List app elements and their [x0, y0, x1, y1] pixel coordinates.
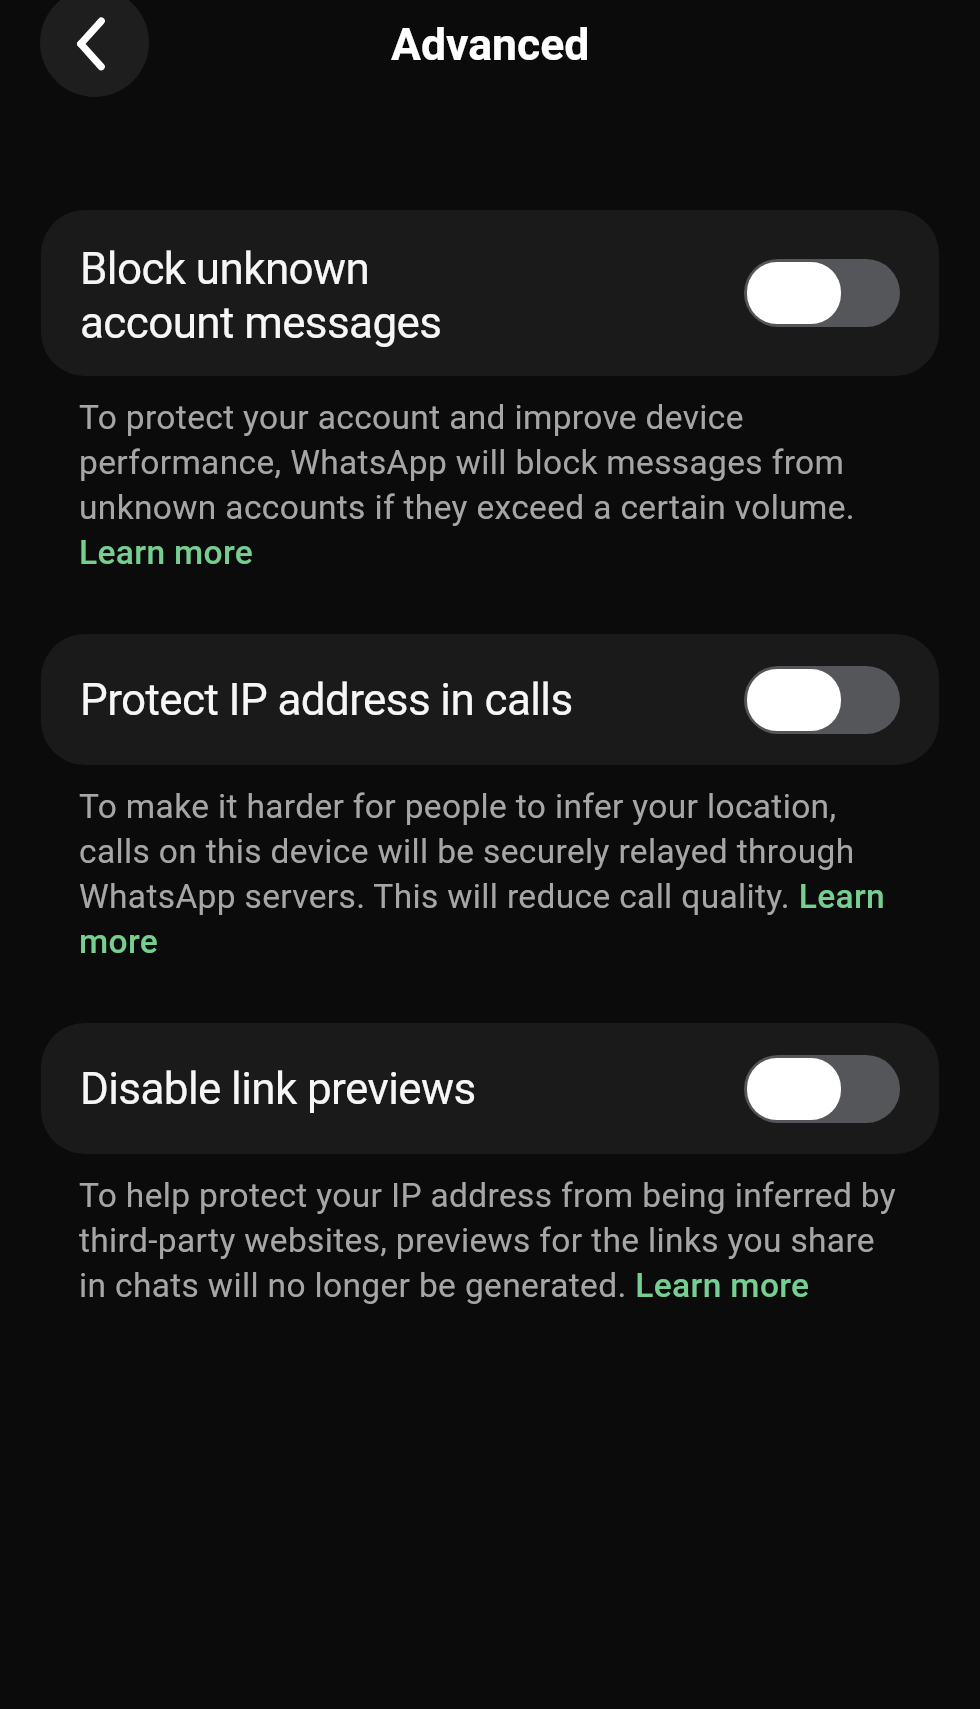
staticText: Advanced [391, 19, 590, 71]
staticText: Block unknown account messages [80, 243, 744, 348]
button[interactable]: To make it harder for people to infer yo… [79, 787, 901, 961]
button[interactable]: To protect your account and improve devi… [79, 398, 901, 572]
button[interactable]: Disable link previews [41, 1023, 939, 1154]
button[interactable]: Protect IP address in calls [41, 634, 939, 765]
button[interactable]: To help protect your IP address from bei… [79, 1176, 901, 1305]
button[interactable]: Back [40, 0, 149, 97]
staticText: Disable link previews [80, 1063, 744, 1115]
staticText: Protect IP address in calls [80, 674, 744, 726]
button[interactable]: Block unknown account messages [41, 210, 939, 376]
button[interactable]: Toggle, off [744, 666, 900, 734]
button[interactable]: Toggle, off [744, 1055, 900, 1123]
button[interactable]: Toggle, off [744, 259, 900, 327]
